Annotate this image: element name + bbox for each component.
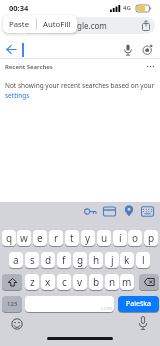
staticText: o	[132, 231, 139, 245]
button[interactable]: x	[41, 274, 55, 290]
button[interactable]: g	[73, 252, 87, 268]
staticText: a	[13, 253, 19, 267]
staticText: d	[45, 253, 52, 267]
button[interactable]	[124, 205, 134, 217]
button[interactable]	[123, 44, 133, 56]
button[interactable]	[103, 206, 116, 217]
button[interactable]: r	[49, 230, 63, 246]
button[interactable]	[138, 316, 148, 331]
button[interactable]: settings	[5, 91, 30, 100]
button[interactable]	[2, 274, 22, 290]
button[interactable]: p	[144, 230, 158, 246]
staticText: h	[93, 253, 100, 267]
staticText: Not showing your recent searches based o…	[5, 81, 155, 90]
button[interactable]	[142, 44, 153, 56]
staticText: i	[119, 231, 122, 245]
staticText: c	[62, 275, 67, 289]
button[interactable]: LT/EN	[25, 296, 114, 312]
staticText: g	[77, 253, 84, 267]
button[interactable]: a	[9, 252, 23, 268]
button[interactable]	[5, 17, 155, 34]
button[interactable]: d	[41, 252, 55, 268]
staticText: w	[20, 231, 28, 245]
button[interactable]: l	[136, 252, 150, 268]
button[interactable]: q	[2, 230, 16, 246]
button[interactable]: t	[65, 230, 79, 246]
button[interactable]: u	[97, 230, 111, 246]
staticText: q	[6, 231, 13, 245]
staticText: LT/EN	[101, 306, 112, 311]
staticText: n	[109, 275, 116, 289]
staticText: settings	[5, 91, 30, 100]
staticText: t	[70, 231, 74, 245]
staticText: Recent Searches	[5, 63, 53, 71]
staticText: 4G	[123, 4, 131, 12]
staticText: 123	[7, 300, 18, 308]
staticText: gle.com	[77, 20, 107, 31]
staticText: b	[93, 275, 100, 289]
staticText: Paieška	[126, 299, 151, 309]
staticText: s	[30, 253, 35, 267]
button[interactable]: f	[57, 252, 71, 268]
staticText: m	[122, 275, 132, 289]
staticText: z	[30, 275, 35, 289]
button[interactable]	[139, 274, 159, 290]
button[interactable]	[11, 318, 23, 330]
button[interactable]: z	[25, 274, 39, 290]
button[interactable]	[141, 206, 154, 217]
staticText: r	[54, 231, 59, 245]
button[interactable]: c	[57, 274, 71, 290]
button[interactable]: k	[120, 252, 134, 268]
button[interactable]: 123	[2, 296, 22, 312]
staticText: v	[77, 275, 83, 289]
button[interactable]: w	[17, 230, 31, 246]
staticText: f	[62, 253, 66, 267]
staticText: j	[111, 253, 114, 267]
button[interactable]	[6, 44, 17, 55]
button[interactable]: m	[120, 274, 134, 290]
staticText: u	[101, 231, 108, 245]
staticText: AutoFill	[43, 19, 71, 30]
button[interactable]: n	[105, 274, 119, 290]
button[interactable]: AutoFill	[37, 15, 77, 33]
button[interactable]	[84, 206, 97, 217]
button[interactable]: i	[113, 230, 127, 246]
staticText: y	[85, 231, 91, 245]
button[interactable]: e	[33, 230, 47, 246]
staticText: Paste	[9, 19, 30, 30]
staticText: e	[37, 231, 43, 245]
button[interactable]: Paste	[3, 15, 36, 33]
button[interactable]: v	[73, 274, 87, 290]
button[interactable]: o	[128, 230, 142, 246]
staticText: x	[45, 275, 51, 289]
button[interactable]	[146, 65, 156, 68]
button[interactable]: b	[89, 274, 103, 290]
staticText: 00:34	[9, 3, 29, 13]
button[interactable]: Paieška	[118, 296, 159, 312]
staticText: k	[124, 253, 130, 267]
button[interactable]: h	[89, 252, 103, 268]
button[interactable]: j	[105, 252, 119, 268]
button[interactable]: s	[25, 252, 39, 268]
staticText: l	[142, 253, 145, 267]
button[interactable]: y	[81, 230, 95, 246]
staticText: p	[148, 231, 155, 245]
